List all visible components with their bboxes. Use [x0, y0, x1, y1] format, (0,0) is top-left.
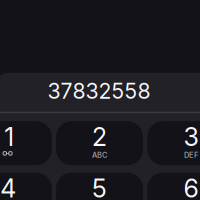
- staticText: 37832558: [47, 78, 150, 104]
- staticText: 1: [4, 122, 14, 152]
- staticText: 5: [92, 173, 107, 200]
- button[interactable]: 5: [56, 173, 143, 200]
- staticText: 2: [92, 122, 107, 152]
- staticText: ABC: [92, 150, 107, 159]
- staticText: 6: [183, 173, 198, 200]
- staticText: 3: [183, 122, 198, 152]
- button[interactable]: 3: [147, 121, 200, 165]
- staticText: 4: [0, 173, 16, 200]
- staticText: DEF: [184, 150, 198, 159]
- button[interactable]: 6: [147, 173, 200, 200]
- button[interactable]: 1: [0, 121, 52, 165]
- button[interactable]: 2: [56, 121, 143, 165]
- button[interactable]: 4: [0, 173, 52, 200]
